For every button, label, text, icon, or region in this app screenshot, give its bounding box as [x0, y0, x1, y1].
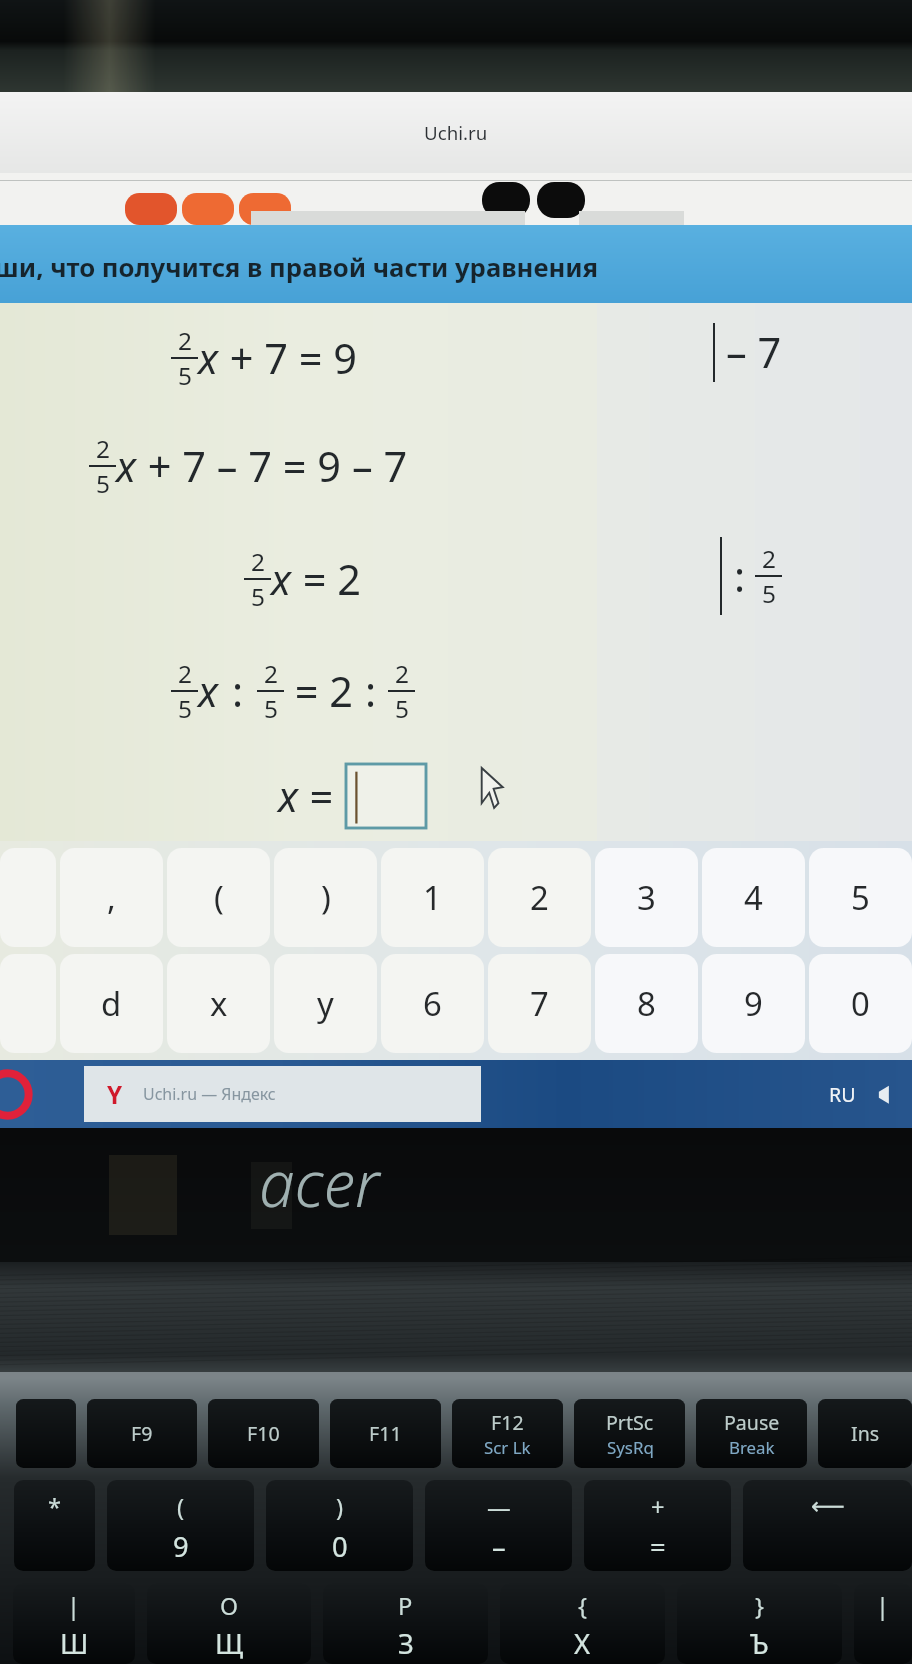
button[interactable]: {: [500, 1583, 665, 1664]
button[interactable]: О: [147, 1583, 311, 1664]
staticText: F10: [247, 1420, 280, 1447]
staticText: :: [232, 663, 244, 720]
staticText: 9: [173, 1528, 189, 1565]
staticText: = 2: [292, 551, 362, 608]
button[interactable]: Y: [84, 1066, 481, 1122]
button[interactable]: (: [167, 848, 270, 947]
button[interactable]: 0: [809, 954, 912, 1053]
button[interactable]: PrtSc: [574, 1399, 685, 1468]
button[interactable]: Ins: [818, 1399, 912, 1468]
staticText: x: [116, 438, 137, 495]
staticText: d: [101, 981, 122, 1026]
staticText: 9: [744, 981, 763, 1026]
staticText: + 7 – 7 = 9 – 7: [137, 438, 408, 495]
staticText: 2: [178, 324, 192, 357]
button[interactable]: 9: [702, 954, 805, 1053]
staticText: 2: [96, 432, 110, 465]
staticText: 0: [851, 981, 870, 1026]
staticText: |: [876, 1590, 890, 1622]
button[interactable]: [182, 193, 234, 225]
button[interactable]: [482, 182, 530, 218]
button[interactable]: y: [274, 954, 377, 1053]
staticText: SysRq: [607, 1436, 654, 1459]
staticText: (: [214, 875, 224, 920]
button[interactable]: [125, 193, 177, 225]
staticText: 5: [251, 580, 265, 613]
staticText: {: [578, 1590, 588, 1622]
staticText: x: [198, 663, 219, 720]
button[interactable]: [239, 193, 291, 225]
button[interactable]: +: [584, 1480, 731, 1571]
button[interactable]: F11: [330, 1399, 441, 1468]
button[interactable]: *: [14, 1480, 95, 1571]
staticText: –: [492, 1528, 506, 1565]
staticText: Ъ: [750, 1625, 769, 1662]
staticText: RU: [829, 1081, 856, 1108]
staticText: 5: [264, 692, 278, 725]
button[interactable]: 5: [809, 848, 912, 947]
staticText: :: [365, 663, 377, 720]
button[interactable]: F12: [452, 1399, 563, 1468]
staticText: 3: [637, 875, 656, 920]
button[interactable]: d: [60, 954, 163, 1053]
button[interactable]: [16, 1399, 76, 1468]
button[interactable]: x: [167, 954, 270, 1053]
staticText: y: [317, 981, 334, 1026]
button[interactable]: Р: [323, 1583, 488, 1664]
staticText: 5: [178, 359, 192, 392]
staticText: Х: [574, 1625, 591, 1662]
staticText: =: [650, 1528, 666, 1565]
button[interactable]: F9: [87, 1399, 197, 1468]
staticText: x: [210, 981, 228, 1026]
button[interactable]: |: [854, 1583, 912, 1664]
staticText: Р: [398, 1590, 413, 1622]
staticText: x: [198, 330, 219, 387]
button[interactable]: 3: [595, 848, 698, 947]
button[interactable]: ,: [60, 848, 163, 947]
button[interactable]: F10: [208, 1399, 319, 1468]
staticText: +: [651, 1491, 665, 1523]
staticText: 2: [530, 875, 549, 920]
button[interactable]: ⟵: [743, 1480, 912, 1571]
staticText: *: [48, 1491, 62, 1523]
staticText: (: [177, 1491, 185, 1523]
staticText: = 2: [284, 663, 354, 720]
button[interactable]: 7: [488, 954, 591, 1053]
button[interactable]: |: [13, 1583, 135, 1664]
button[interactable]: ): [274, 848, 377, 947]
staticText: ,: [107, 875, 116, 920]
button[interactable]: 1: [381, 848, 484, 947]
staticText: 2: [264, 657, 278, 690]
staticText: 8: [637, 981, 656, 1026]
staticText: —: [487, 1491, 511, 1523]
staticText: 2: [762, 542, 776, 575]
staticText: – 7: [726, 324, 782, 381]
button[interactable]: }: [677, 1583, 842, 1664]
button[interactable]: 8: [595, 954, 698, 1053]
staticText: }: [755, 1590, 765, 1622]
staticText: Ш: [60, 1625, 89, 1662]
staticText: F9: [131, 1420, 153, 1447]
staticText: 5: [395, 692, 409, 725]
button[interactable]: [537, 182, 585, 218]
staticText: ιши, что получится в правой части уравне…: [0, 250, 599, 285]
button[interactable]: ): [266, 1480, 413, 1571]
staticText: x =: [278, 768, 333, 825]
staticText: З: [398, 1625, 414, 1662]
staticText: |: [67, 1590, 81, 1622]
button[interactable]: 2: [488, 848, 591, 947]
staticText: 6: [423, 981, 442, 1026]
button[interactable]: 6: [381, 954, 484, 1053]
button[interactable]: 4: [702, 848, 805, 947]
staticText: F11: [369, 1420, 402, 1447]
staticText: 5: [96, 467, 110, 500]
button[interactable]: —: [425, 1480, 572, 1571]
staticText: Break: [729, 1436, 775, 1459]
button[interactable]: (: [107, 1480, 254, 1571]
staticText: Uchi.ru — Яндекс: [143, 1083, 276, 1105]
button[interactable]: [346, 764, 426, 828]
staticText: ⟵: [811, 1492, 845, 1520]
button[interactable]: Pause: [696, 1399, 807, 1468]
